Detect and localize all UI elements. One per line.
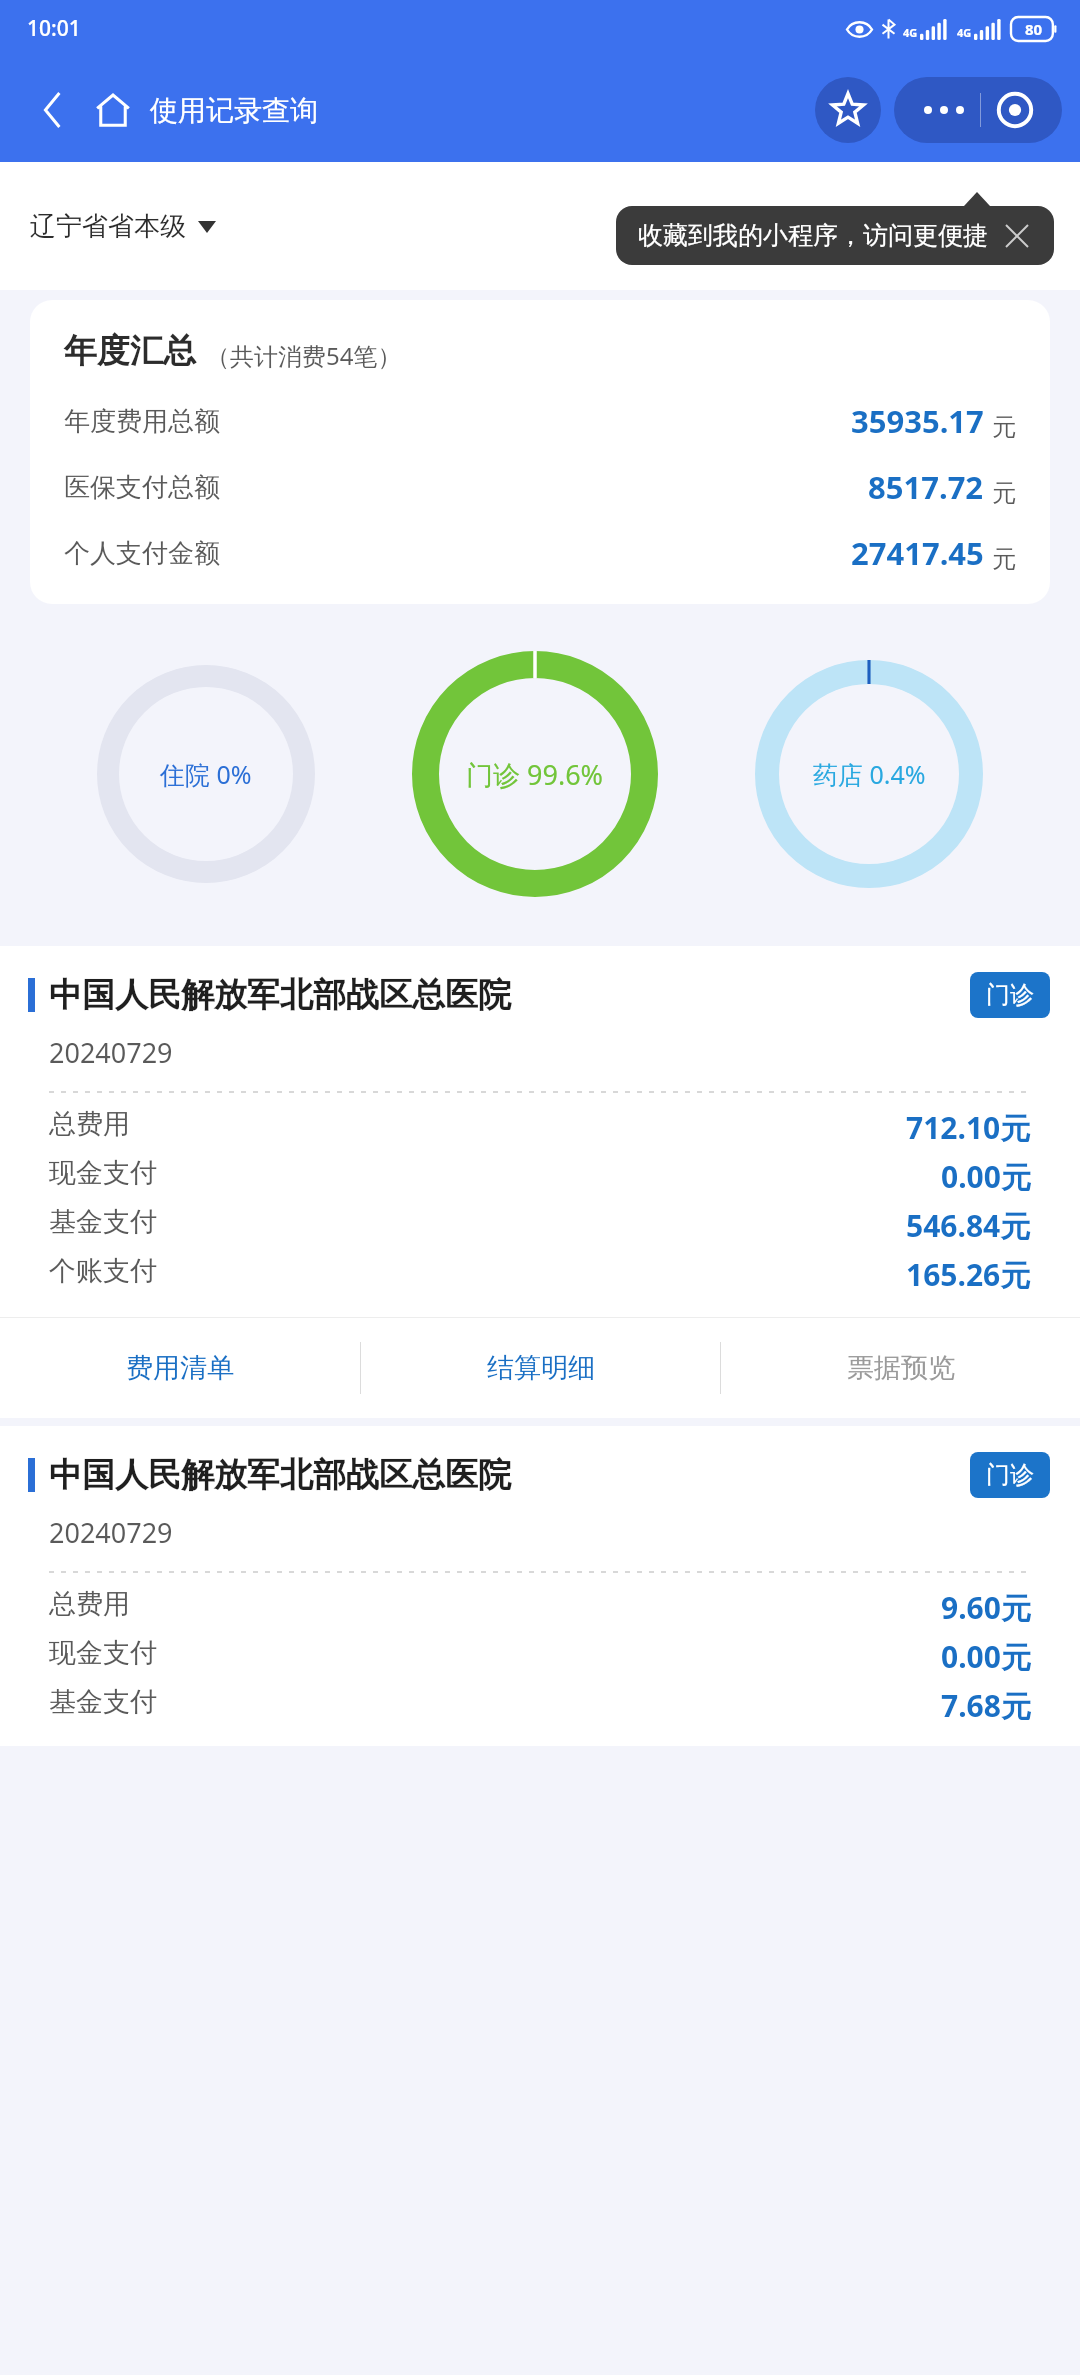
staticText: 总费用 (49, 1587, 130, 1621)
staticText: 27417.45 (851, 532, 984, 574)
staticText: 4G (903, 25, 918, 40)
button[interactable]: 费用清单 (0, 1318, 360, 1418)
staticText: 门诊 (986, 1460, 1034, 1490)
staticText: 基金支付 (49, 1205, 157, 1239)
button[interactable]: 年度汇总 (30, 300, 1050, 604)
staticText: 个账支付 (49, 1254, 157, 1288)
staticText: 20240729 (49, 1514, 173, 1551)
staticText: 现金支付 (49, 1156, 157, 1190)
staticText: 个人支付金额 (64, 537, 220, 570)
staticText: （共计消费54笔） (206, 339, 402, 372)
staticText: 基金支付 (49, 1685, 157, 1719)
staticText: 中国人民解放军北部战区总医院 (49, 1454, 970, 1496)
staticText: 医保支付总额 (64, 471, 220, 504)
button[interactable]: 门诊 99.6% (412, 651, 658, 897)
staticText: 165.26元 (906, 1254, 1031, 1295)
staticText: 门诊 99.6% (466, 756, 604, 793)
button[interactable]: 中国人民解放军北部战区总医院 (0, 946, 1080, 1418)
button[interactable]: Back (26, 83, 80, 137)
button[interactable]: 药店 0.4% (755, 660, 983, 888)
button[interactable]: Home (86, 83, 140, 137)
button[interactable]: 票据预览 (721, 1318, 1080, 1418)
button[interactable]: 中国人民解放军北部战区总医院 (0, 1426, 1080, 1746)
staticText: 7.68元 (941, 1685, 1031, 1726)
staticText: 9.60元 (941, 1587, 1031, 1628)
button[interactable]: 结算明细 (361, 1318, 720, 1418)
button[interactable]: 门诊 (970, 972, 1050, 1018)
staticText: 元 (992, 544, 1016, 574)
staticText: 药店 0.4% (813, 757, 926, 791)
button[interactable]: 住院 0% (97, 665, 315, 883)
staticText: 使用记录查询 (150, 93, 318, 128)
staticText: 546.84元 (906, 1205, 1031, 1246)
staticText: 8517.72 (868, 466, 984, 508)
staticText: 门诊 (986, 980, 1034, 1010)
staticText: 0.00元 (941, 1156, 1031, 1197)
staticText: 费用清单 (126, 1351, 234, 1385)
button[interactable]: 收藏到我的小程序，访问更便捷 (616, 206, 1054, 265)
staticText: 辽宁省省本级 (30, 210, 186, 243)
button[interactable]: More options (894, 77, 1062, 143)
staticText: 35935.17 (851, 400, 984, 442)
staticText: 20240729 (49, 1034, 173, 1071)
staticText: 4G (957, 25, 972, 40)
staticText: 结算明细 (487, 1351, 595, 1385)
staticText: 年度费用总额 (64, 405, 220, 438)
button[interactable]: 门诊 (970, 1452, 1050, 1498)
staticText: 元 (992, 478, 1016, 508)
button[interactable]: 辽宁省省本级 (30, 210, 216, 243)
button[interactable]: Close (1002, 221, 1032, 251)
staticText: 中国人民解放军北部战区总医院 (49, 974, 970, 1016)
staticText: 80 (1025, 19, 1043, 39)
staticText: 年度汇总 (64, 330, 196, 372)
button[interactable]: Favorite (815, 77, 881, 143)
staticText: 0.00元 (941, 1636, 1031, 1677)
staticText: 票据预览 (847, 1351, 955, 1385)
staticText: 712.10元 (906, 1107, 1031, 1148)
staticText: 现金支付 (49, 1636, 157, 1670)
staticText: 收藏到我的小程序，访问更便捷 (638, 220, 988, 251)
staticText: 住院 0% (160, 757, 252, 791)
staticText: 总费用 (49, 1107, 130, 1141)
staticText: 10:01 (27, 14, 81, 43)
staticText: 元 (992, 412, 1016, 442)
